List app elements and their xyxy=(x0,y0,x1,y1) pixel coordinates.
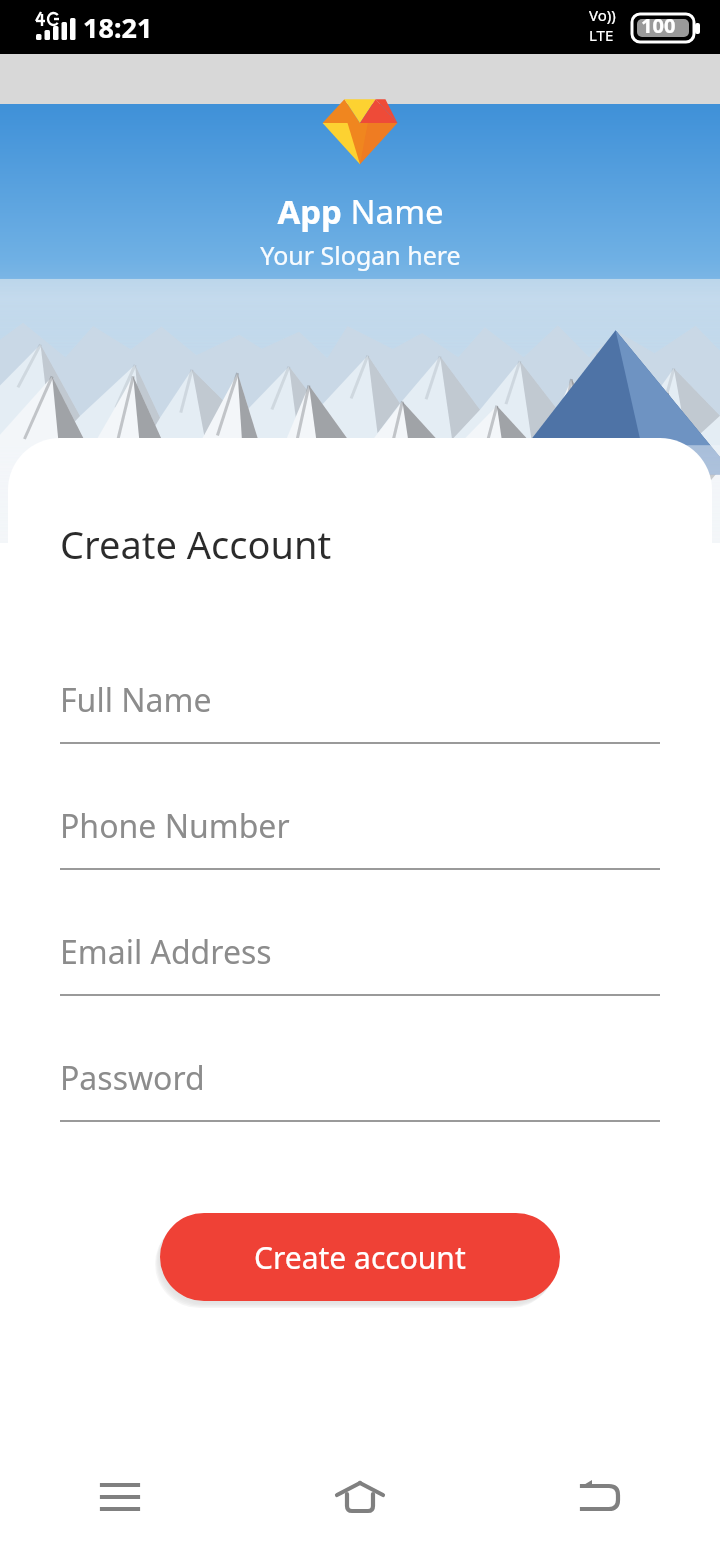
staticText: LTE xyxy=(589,25,614,45)
staticText: 100 xyxy=(641,12,676,39)
button[interactable]: Recents xyxy=(0,1450,240,1544)
staticText: Create account xyxy=(254,1237,466,1278)
staticText: 18:21 xyxy=(83,9,153,46)
button[interactable]: Email Address xyxy=(60,910,660,1036)
staticText: Full Name xyxy=(60,678,212,722)
button[interactable]: Back xyxy=(480,1450,720,1544)
button[interactable]: Password xyxy=(60,1036,660,1162)
staticText: App Name xyxy=(277,189,444,234)
button[interactable]: Create account xyxy=(160,1213,560,1301)
staticText: Password xyxy=(60,1056,205,1100)
button[interactable]: Phone Number xyxy=(60,784,660,910)
staticText: Phone Number xyxy=(60,804,290,848)
staticText: Create Account xyxy=(60,518,332,570)
button[interactable]: Home xyxy=(240,1450,480,1544)
staticText: Email Address xyxy=(60,930,272,974)
staticText: Vo)) xyxy=(589,5,616,25)
staticText: Your Slogan here xyxy=(260,238,461,272)
button[interactable]: Full Name xyxy=(60,658,660,784)
